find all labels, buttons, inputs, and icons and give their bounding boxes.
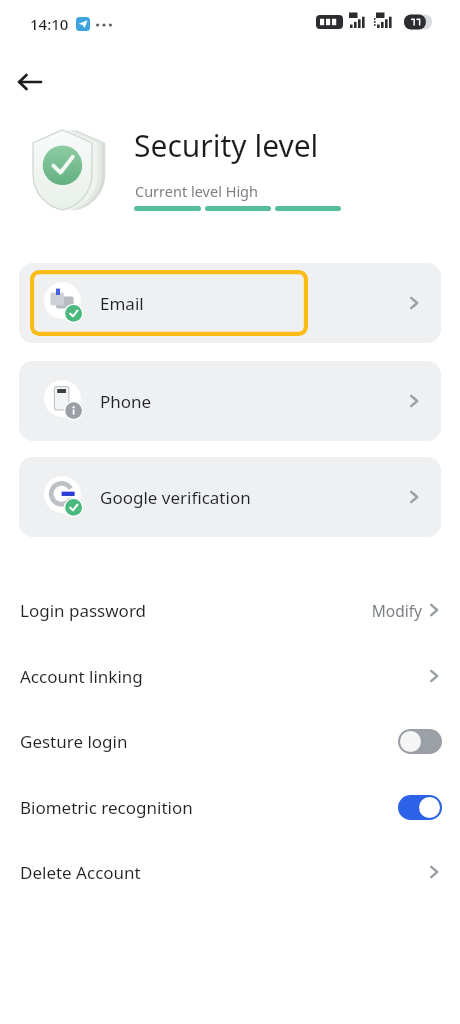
button[interactable]: Biometric recognition	[398, 795, 442, 820]
button[interactable]: Gesture login	[398, 729, 442, 754]
button[interactable]: Email	[19, 263, 441, 343]
button[interactable]: Gesture login	[0, 715, 460, 767]
button[interactable]: Login password	[0, 584, 460, 636]
staticText: Security level	[134, 125, 319, 166]
staticText: Biometric recognition	[20, 796, 193, 819]
staticText: Delete Account	[20, 861, 141, 884]
staticText: Account linking	[20, 665, 143, 688]
staticText: Login password	[20, 599, 147, 622]
button[interactable]: Delete Account	[0, 846, 460, 898]
staticText: Modify	[371, 600, 422, 621]
button[interactable]: Biometric recognition	[0, 781, 460, 833]
button[interactable]: Back	[6, 58, 54, 106]
button[interactable]: Google verification	[19, 457, 441, 537]
staticText: Email	[100, 292, 144, 315]
button[interactable]: Account linking	[0, 650, 460, 702]
staticText: Current level High	[135, 181, 259, 201]
staticText: Google verification	[100, 486, 251, 509]
staticText: Phone	[100, 390, 152, 413]
staticText: Gesture login	[20, 730, 128, 753]
staticText: 14:10	[30, 14, 69, 34]
button[interactable]: Phone	[19, 361, 441, 441]
